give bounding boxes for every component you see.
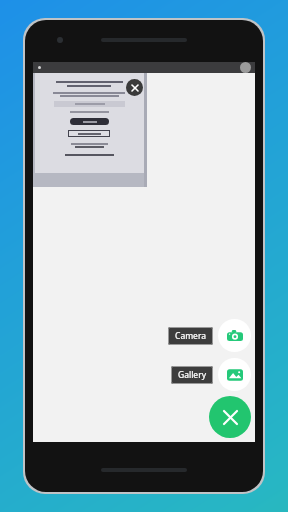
button[interactable]: Camera [218,319,251,352]
button[interactable]: Camera [168,327,213,345]
button[interactable]: Remove photo [126,79,143,96]
button[interactable]: Gallery [218,358,251,391]
staticText: Camera [175,330,206,342]
button[interactable]: Gallery [171,366,213,384]
staticText: Gallery [178,369,206,381]
button[interactable]: Close menu [209,396,251,438]
